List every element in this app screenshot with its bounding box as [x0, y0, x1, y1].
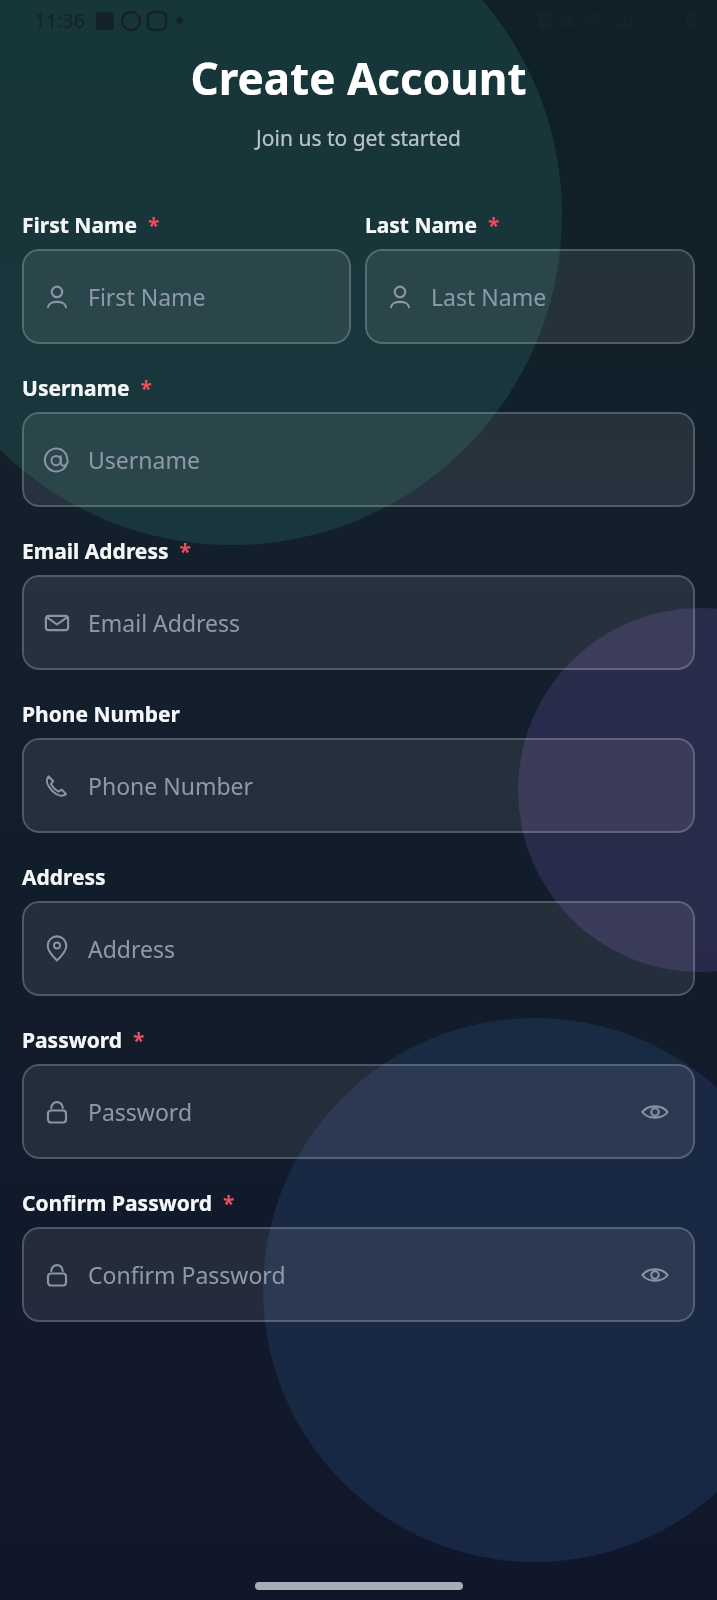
staticText: Address — [88, 933, 675, 964]
staticText: Username * — [22, 374, 152, 403]
button[interactable]: First Name — [22, 249, 351, 344]
staticText: First Name * — [22, 211, 160, 240]
button[interactable]: Confirm Password — [22, 1227, 695, 1322]
button[interactable]: Show password — [635, 1092, 675, 1132]
staticText: Phone Number — [22, 700, 180, 729]
staticText: 11:36 — [34, 7, 86, 34]
staticText: Confirm Password — [88, 1259, 635, 1290]
button[interactable]: Email Address — [22, 575, 695, 670]
staticText: Join us to get started — [0, 124, 717, 153]
staticText: Create Account — [0, 48, 717, 108]
button[interactable]: Show password — [635, 1255, 675, 1295]
button[interactable]: Password — [22, 1064, 695, 1159]
staticText: First Name — [88, 281, 331, 312]
button[interactable]: Phone Number — [22, 738, 695, 833]
staticText: Confirm Password * — [22, 1189, 235, 1218]
staticText: Address — [22, 863, 106, 892]
button[interactable]: Username — [22, 412, 695, 507]
staticText: Email Address — [88, 607, 675, 638]
staticText: Last Name * — [365, 211, 500, 240]
button[interactable]: Last Name — [365, 249, 695, 344]
staticText: Last Name — [431, 281, 675, 312]
staticText: Password — [88, 1096, 635, 1127]
staticText: Phone Number — [88, 770, 675, 801]
button[interactable]: Address — [22, 901, 695, 996]
staticText: Email Address * — [22, 537, 191, 566]
staticText: Username — [88, 444, 675, 475]
staticText: Password * — [22, 1026, 145, 1055]
